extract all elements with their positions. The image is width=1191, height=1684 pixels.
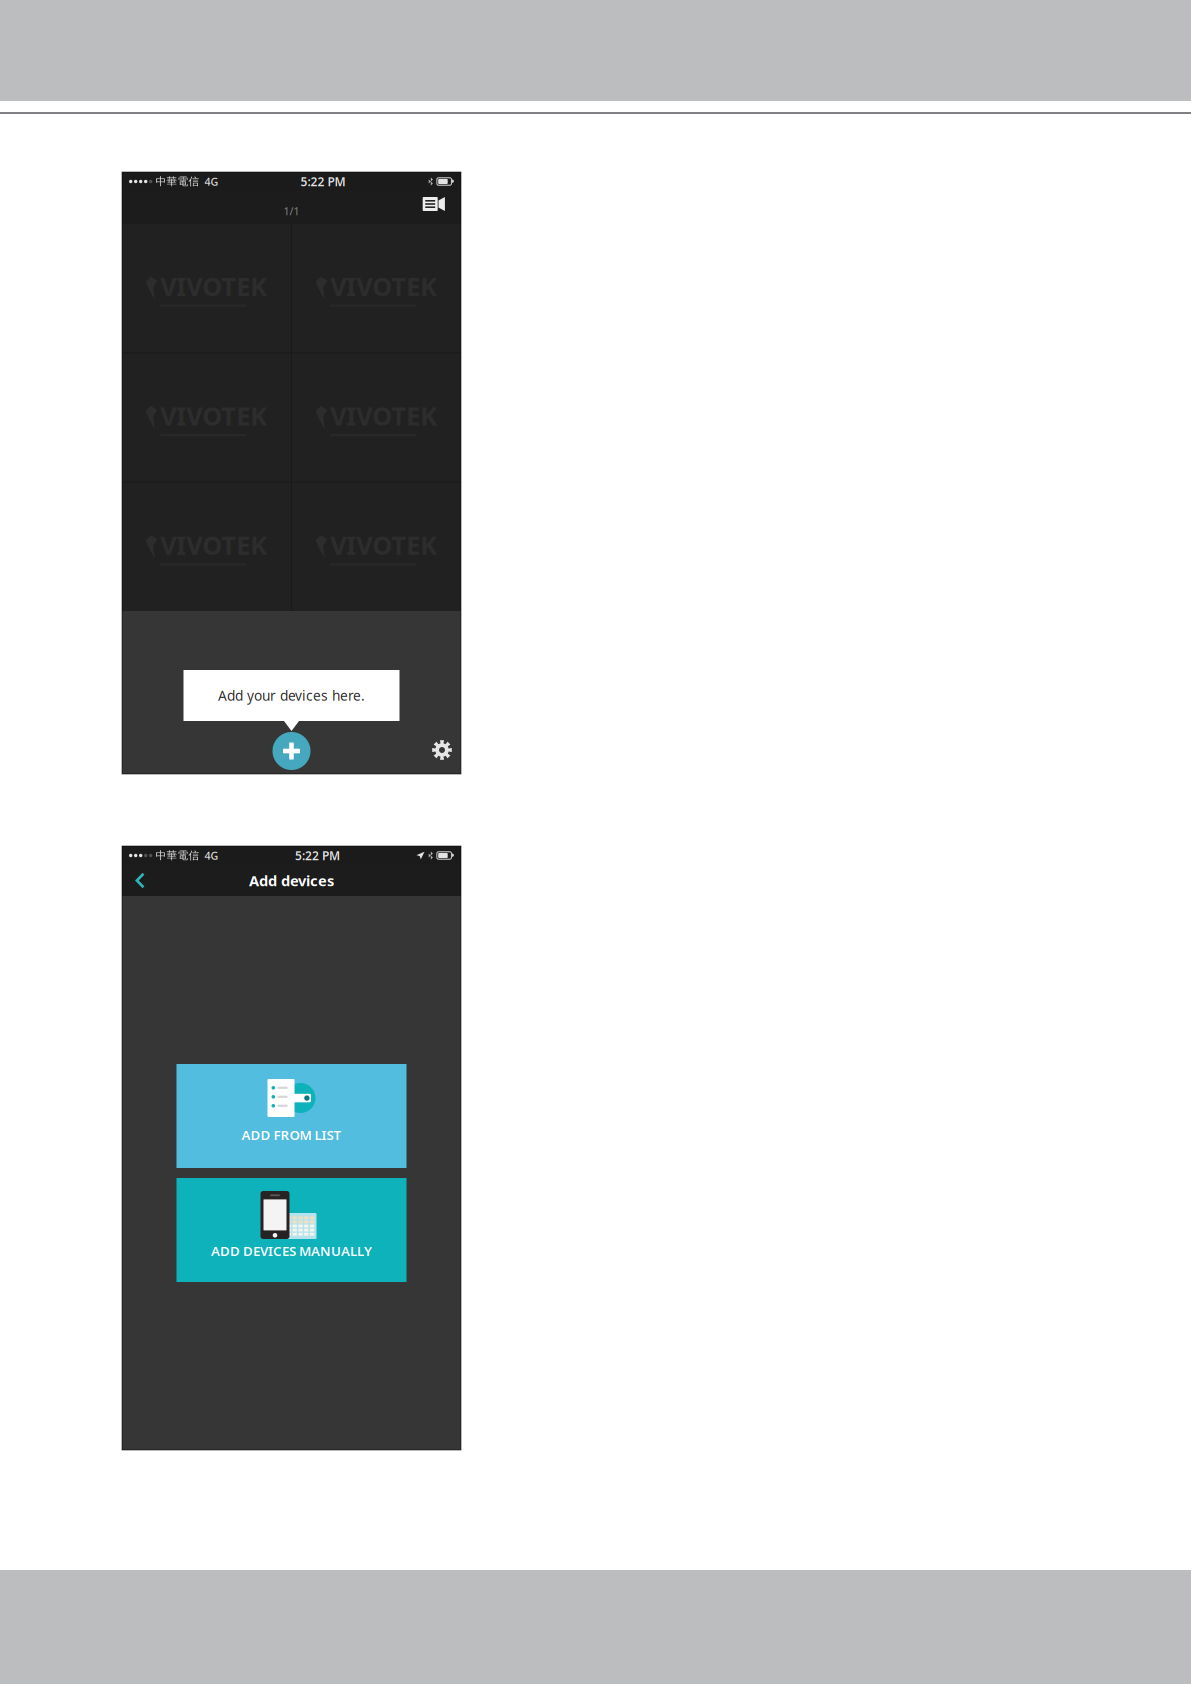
- staticText: 中華電信: [155, 175, 199, 188]
- staticText: VIVOTEK: [330, 269, 437, 303]
- staticText: VIVOTEK: [330, 528, 437, 562]
- staticText: 1/1: [283, 204, 299, 218]
- staticText: 中華電信: [155, 849, 199, 862]
- staticText: ADD FROM LIST: [241, 1126, 341, 1144]
- staticText: ADD DEVICES MANUALLY: [211, 1242, 372, 1260]
- staticText: VIVOTEK: [160, 528, 267, 562]
- staticText: Add devices: [249, 871, 334, 890]
- staticText: 4G: [204, 848, 218, 863]
- button[interactable]: ADD DEVICES MANUALLY: [176, 1178, 406, 1282]
- button[interactable]: Add devices: [272, 732, 310, 770]
- button[interactable]: Back: [126, 867, 153, 894]
- staticText: VIVOTEK: [160, 399, 267, 432]
- staticText: 4G: [204, 174, 218, 189]
- staticText: Add your devices here.: [218, 686, 365, 705]
- staticText: VIVOTEK: [330, 399, 437, 432]
- staticText: 5:22 PM: [295, 847, 340, 863]
- button[interactable]: ADD FROM LIST: [176, 1064, 406, 1168]
- button[interactable]: Settings: [427, 735, 457, 765]
- button[interactable]: Camera view: [418, 193, 450, 215]
- staticText: VIVOTEK: [160, 269, 267, 303]
- staticText: 5:22 PM: [300, 173, 345, 189]
